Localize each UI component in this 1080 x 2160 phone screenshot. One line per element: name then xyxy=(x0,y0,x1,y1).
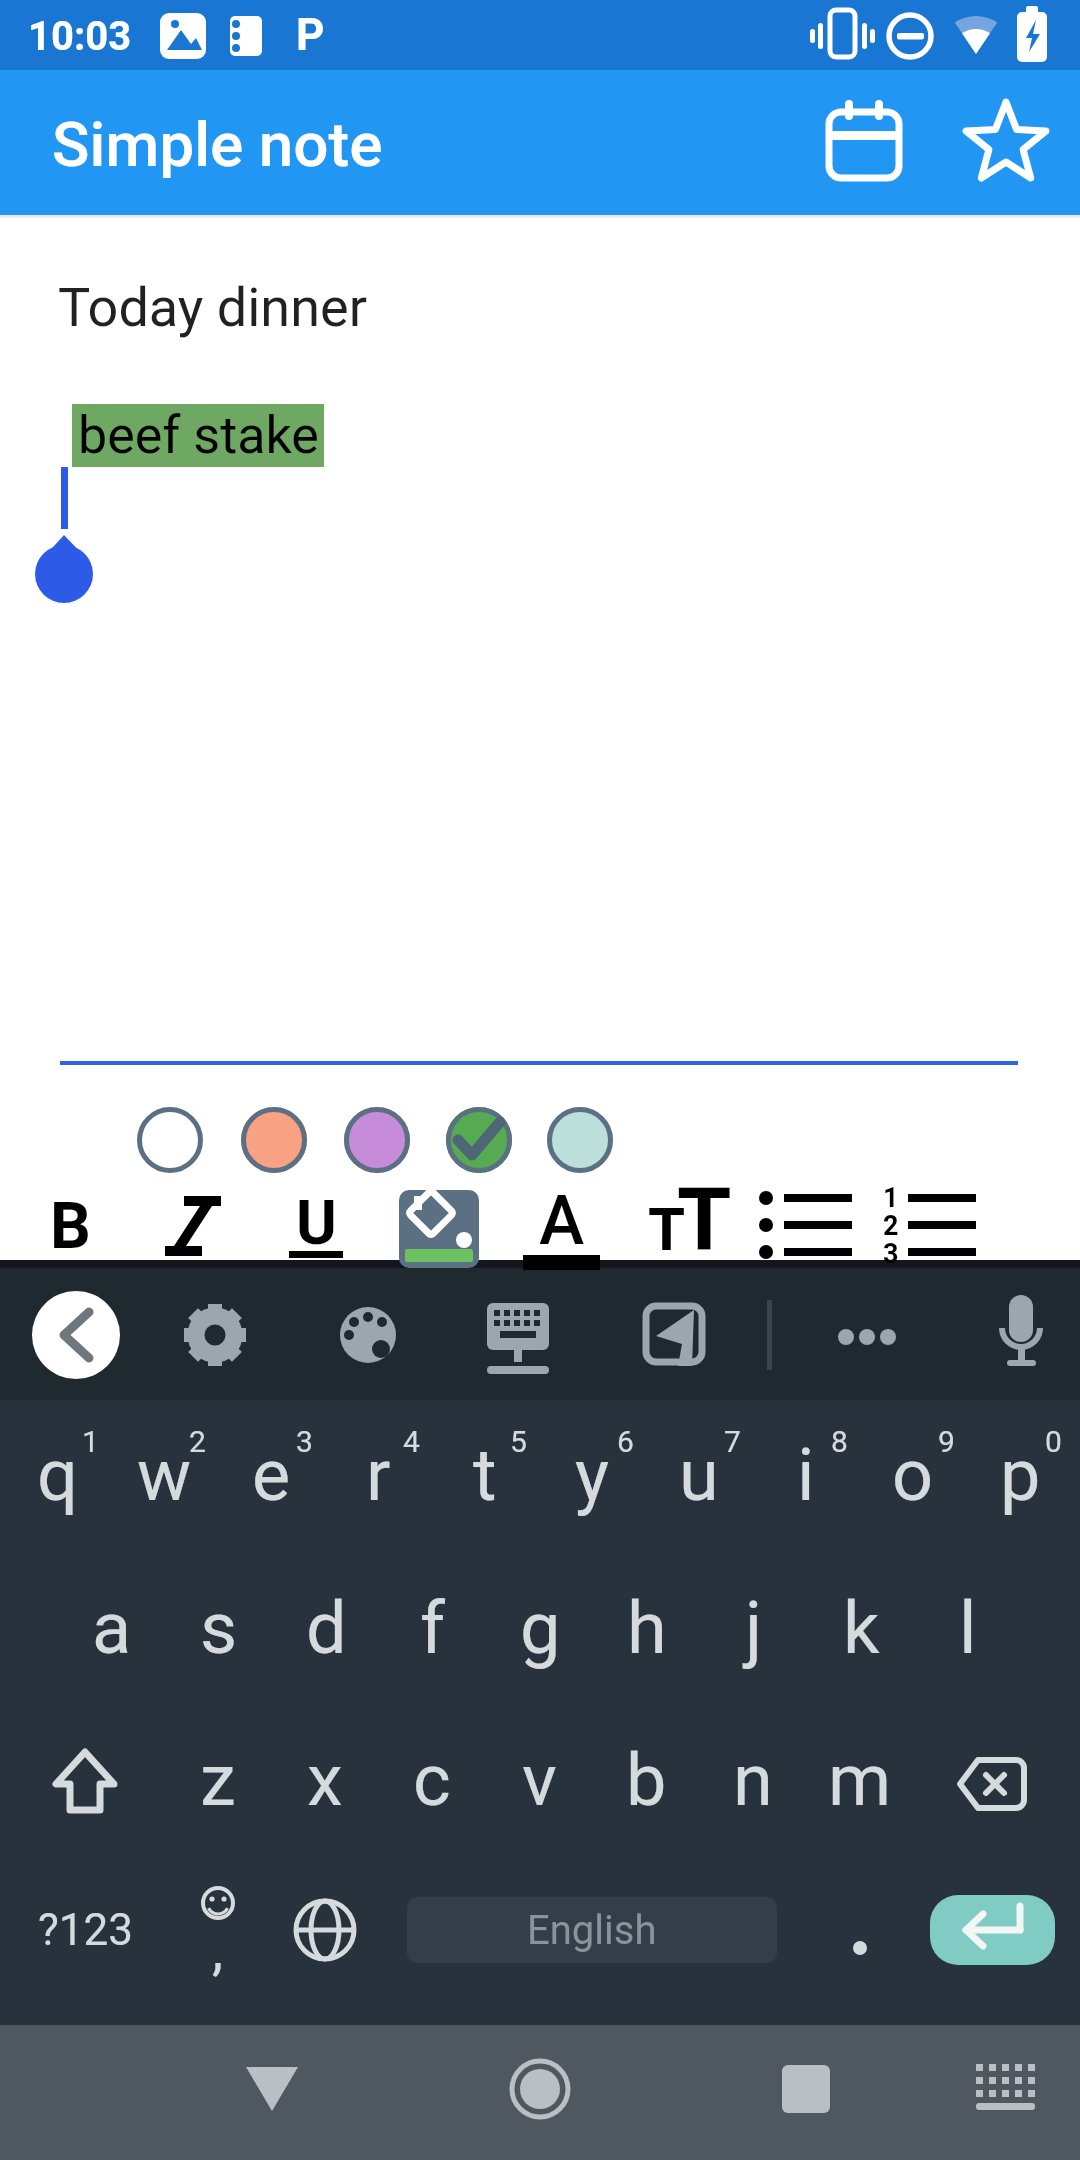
staticText: f xyxy=(420,1586,446,1670)
staticText: 7 xyxy=(724,1424,741,1459)
staticText: 1 xyxy=(883,1182,899,1214)
staticText: A xyxy=(539,1181,585,1261)
staticText: 9 xyxy=(938,1424,955,1459)
button[interactable] xyxy=(216,1400,324,1556)
staticText: 1 xyxy=(82,1424,99,1459)
button[interactable] xyxy=(756,1400,864,1556)
staticText: r xyxy=(366,1433,391,1517)
button[interactable] xyxy=(914,1556,1021,1706)
staticText: 10:03 xyxy=(28,13,132,60)
staticText: , xyxy=(212,1917,224,1983)
button[interactable] xyxy=(810,95,915,195)
button[interactable] xyxy=(734,2035,878,2145)
button[interactable] xyxy=(164,1856,271,2025)
staticText: 6 xyxy=(617,1424,634,1459)
button[interactable] xyxy=(593,1556,700,1706)
button[interactable] xyxy=(0,1706,164,1856)
staticText: 8 xyxy=(831,1424,848,1459)
staticText: o xyxy=(892,1433,934,1517)
button[interactable] xyxy=(108,1400,216,1556)
staticText: T xyxy=(677,1168,732,1271)
staticText: beef stake xyxy=(78,405,319,466)
button[interactable] xyxy=(432,1400,540,1556)
button[interactable] xyxy=(540,1400,648,1556)
staticText: n xyxy=(733,1738,773,1822)
button[interactable] xyxy=(972,1400,1080,1556)
staticText: q xyxy=(37,1433,78,1517)
staticText: 2 xyxy=(189,1424,206,1459)
staticText: z xyxy=(200,1738,236,1822)
button[interactable] xyxy=(324,1400,432,1556)
staticText: p xyxy=(1000,1433,1041,1517)
button[interactable] xyxy=(864,1400,972,1556)
staticText: i xyxy=(797,1433,815,1517)
button[interactable] xyxy=(446,1107,512,1173)
staticText: 0 xyxy=(1045,1424,1062,1459)
button[interactable] xyxy=(648,1400,756,1556)
button[interactable] xyxy=(807,1556,914,1706)
staticText: x xyxy=(307,1738,343,1822)
staticText: w xyxy=(137,1433,192,1517)
staticText: k xyxy=(843,1586,880,1670)
staticText: g xyxy=(520,1586,561,1670)
button[interactable] xyxy=(700,1556,807,1706)
staticText: b xyxy=(626,1738,667,1822)
staticText: a xyxy=(92,1586,132,1670)
staticText: 4 xyxy=(403,1424,420,1459)
staticText: c xyxy=(413,1738,451,1822)
staticText: English xyxy=(527,1907,657,1954)
staticText: s xyxy=(200,1586,238,1670)
button[interactable] xyxy=(955,95,1060,195)
staticText: h xyxy=(627,1586,667,1670)
button[interactable] xyxy=(806,1706,913,1856)
staticText: v xyxy=(522,1738,557,1822)
staticText: U xyxy=(296,1186,337,1259)
button[interactable] xyxy=(468,2035,612,2145)
button[interactable] xyxy=(940,2035,1070,2145)
staticText: ?123 xyxy=(38,1904,133,1956)
button[interactable] xyxy=(0,1856,164,2025)
staticText: e xyxy=(252,1433,291,1517)
staticText: P xyxy=(296,9,325,61)
button[interactable] xyxy=(241,1107,307,1173)
button[interactable] xyxy=(547,1107,613,1173)
button[interactable] xyxy=(271,1706,378,1856)
staticText: j xyxy=(745,1586,763,1670)
button[interactable] xyxy=(0,1400,108,1556)
staticText: Today dinner xyxy=(58,276,367,339)
button[interactable] xyxy=(486,1556,593,1706)
button[interactable] xyxy=(164,1706,271,1856)
button[interactable] xyxy=(58,1556,165,1706)
button[interactable] xyxy=(271,1856,378,2025)
staticText: Simple note xyxy=(52,108,383,181)
staticText: t xyxy=(473,1433,497,1517)
button[interactable] xyxy=(930,1895,1055,1965)
button[interactable] xyxy=(165,1556,272,1706)
staticText: d xyxy=(306,1586,347,1670)
button[interactable] xyxy=(399,1190,479,1268)
staticText: u xyxy=(679,1433,719,1517)
staticText: B xyxy=(50,1189,91,1264)
staticText: 2 xyxy=(883,1210,899,1242)
button[interactable] xyxy=(378,1706,485,1856)
button[interactable] xyxy=(379,1556,486,1706)
staticText: T xyxy=(648,1194,686,1264)
button[interactable] xyxy=(344,1107,410,1173)
button[interactable] xyxy=(272,1556,379,1706)
staticText: l xyxy=(959,1586,977,1670)
button[interactable] xyxy=(485,1706,592,1856)
button[interactable]: English xyxy=(407,1897,777,1963)
staticText: 3 xyxy=(296,1424,313,1459)
button[interactable] xyxy=(592,1706,699,1856)
button[interactable] xyxy=(806,1856,913,2025)
button[interactable] xyxy=(200,2035,344,2145)
staticText: m xyxy=(828,1738,892,1822)
staticText: 3 xyxy=(883,1238,899,1270)
button[interactable] xyxy=(916,1706,1080,1856)
staticText: y xyxy=(575,1433,610,1517)
button[interactable] xyxy=(699,1706,806,1856)
staticText: 5 xyxy=(510,1424,527,1459)
button[interactable] xyxy=(137,1107,203,1173)
